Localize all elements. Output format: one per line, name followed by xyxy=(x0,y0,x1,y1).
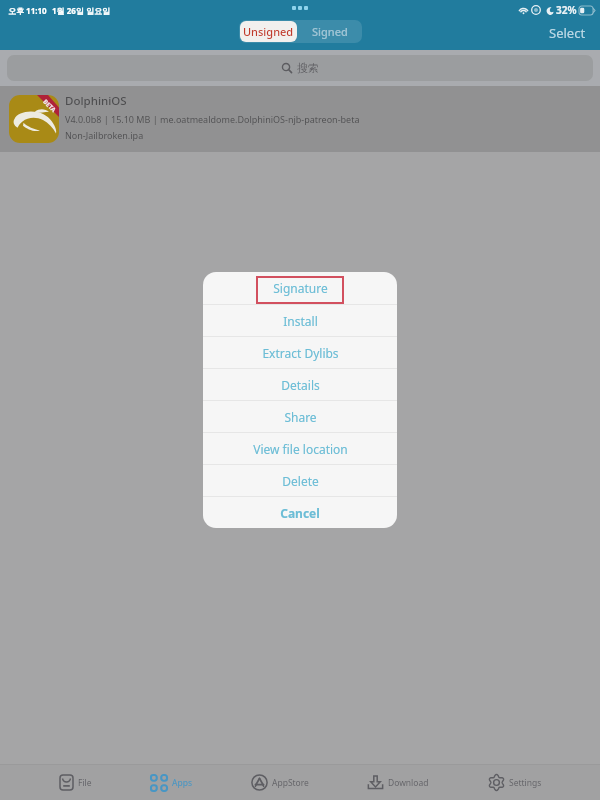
staticText: AppStore xyxy=(272,777,309,789)
staticText: Extract Dylibs xyxy=(262,345,339,361)
button[interactable]: AppStore xyxy=(251,765,309,800)
button[interactable]: Signature xyxy=(203,272,397,304)
staticText: 1월 26일 일요일 xyxy=(52,5,110,16)
staticText: 搜索 xyxy=(297,61,319,75)
staticText: View file location xyxy=(253,441,348,457)
button[interactable]: Share xyxy=(203,401,397,432)
button[interactable]: Unsigned xyxy=(240,21,297,42)
button[interactable]: Cancel xyxy=(203,497,397,528)
staticText: V4.0.0b8 | 15.10 MB | me.oatmealdome.Dol… xyxy=(65,113,360,125)
staticText: Select xyxy=(549,24,586,42)
button[interactable]: Extract Dylibs xyxy=(203,337,397,368)
button[interactable]: BETA xyxy=(0,86,600,152)
staticText: Share xyxy=(284,409,317,425)
staticText: Non-Jailbroken.ipa xyxy=(65,129,144,141)
staticText: Download xyxy=(388,777,429,789)
button[interactable]: View file location xyxy=(203,433,397,464)
staticText: Signed xyxy=(312,24,348,39)
staticText: Install xyxy=(283,313,318,329)
button[interactable]: Apps xyxy=(150,765,192,800)
button[interactable]: Details xyxy=(203,369,397,400)
button[interactable]: Signed xyxy=(298,20,362,43)
staticText: Apps xyxy=(172,777,192,789)
button[interactable]: Install xyxy=(203,305,397,336)
staticText: Settings xyxy=(509,777,542,789)
button[interactable]: Settings xyxy=(488,765,542,800)
staticText: 32% xyxy=(556,3,577,17)
staticText: Delete xyxy=(282,473,319,489)
button[interactable]: Download xyxy=(367,765,429,800)
staticText: 오후 11:10 xyxy=(8,5,47,16)
button[interactable]: 搜索 xyxy=(7,55,593,81)
staticText: Cancel xyxy=(280,505,320,521)
button[interactable]: File xyxy=(59,765,92,800)
staticText: Unsigned xyxy=(243,24,294,39)
staticText: BETA xyxy=(41,98,58,114)
button[interactable]: Delete xyxy=(203,465,397,496)
staticText: DolphiniOS xyxy=(65,93,127,109)
staticText: Details xyxy=(281,377,320,393)
button[interactable]: Select xyxy=(535,21,600,45)
staticText: File xyxy=(78,777,92,789)
staticText: Signature xyxy=(273,280,328,296)
